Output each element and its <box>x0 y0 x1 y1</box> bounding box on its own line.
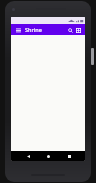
button[interactable]: Back <box>24 152 32 160</box>
button[interactable]: Search <box>66 26 74 34</box>
button[interactable]: Open navigation menu <box>14 26 22 34</box>
button[interactable]: Tune <box>74 26 82 34</box>
button[interactable]: Home <box>44 152 52 160</box>
button[interactable]: Recent apps <box>65 152 73 160</box>
staticText: Shrine <box>25 26 66 33</box>
